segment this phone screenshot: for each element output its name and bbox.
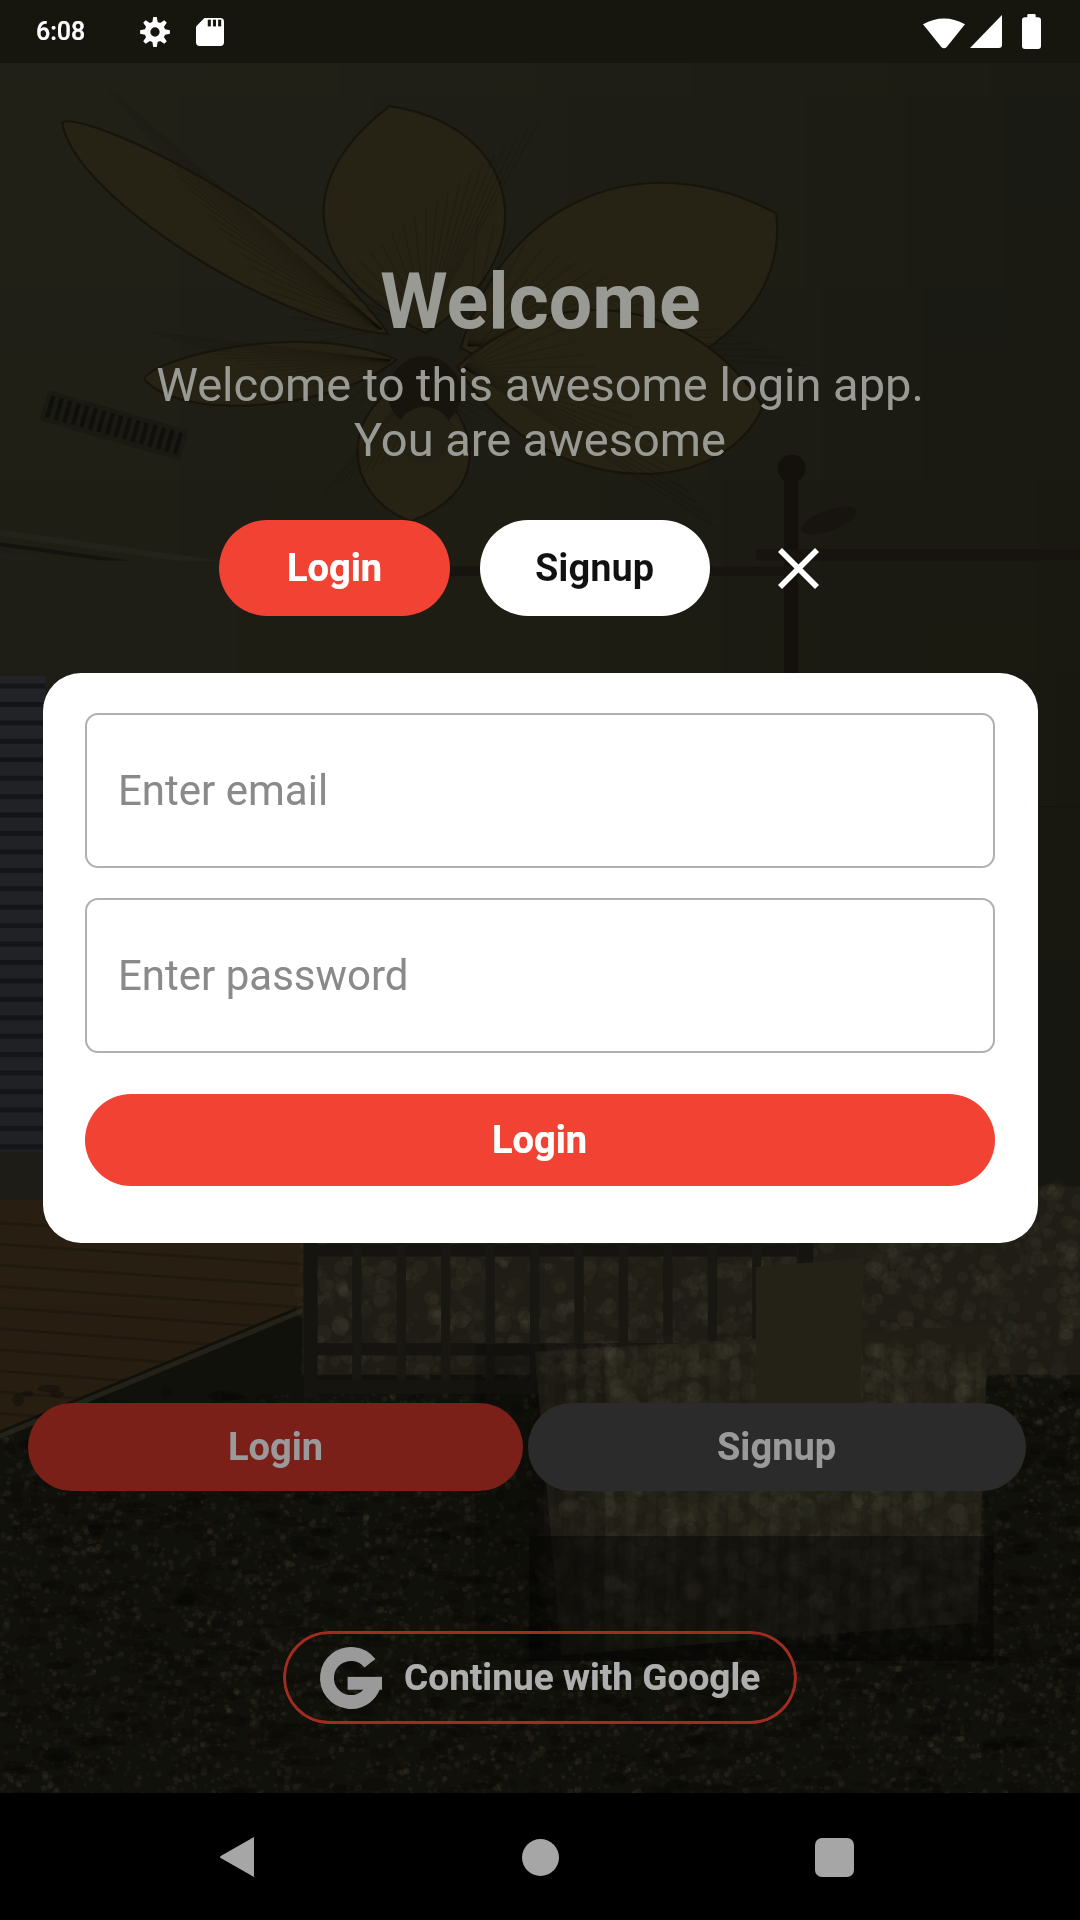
staticText: Login <box>492 1118 588 1163</box>
button[interactable]: Recents <box>786 1809 882 1905</box>
button[interactable]: Login <box>28 1403 523 1491</box>
button[interactable]: Signup <box>528 1403 1026 1491</box>
button[interactable]: Close <box>758 528 838 608</box>
staticText: Enter password <box>118 951 409 1000</box>
button[interactable]: Login <box>85 1094 995 1186</box>
staticText: Enter email <box>118 766 329 815</box>
button[interactable]: Enter password <box>85 898 995 1053</box>
staticText: Login <box>287 546 383 591</box>
staticText: Signup <box>535 546 655 591</box>
staticText: 6:08 <box>36 17 86 46</box>
staticText: Continue with Google <box>404 1656 761 1699</box>
button[interactable]: Continue with Google <box>283 1631 797 1724</box>
button[interactable]: Back <box>198 1809 294 1905</box>
staticText: Welcome <box>380 257 701 347</box>
button[interactable]: Signup <box>480 520 710 616</box>
staticText: Signup <box>717 1425 837 1470</box>
button[interactable]: Login <box>219 520 450 616</box>
button[interactable]: Home <box>492 1809 588 1905</box>
button[interactable]: Enter email <box>85 713 995 868</box>
staticText: Login <box>228 1425 324 1470</box>
staticText: Welcome to this awesome login app. You a… <box>0 357 1080 468</box>
